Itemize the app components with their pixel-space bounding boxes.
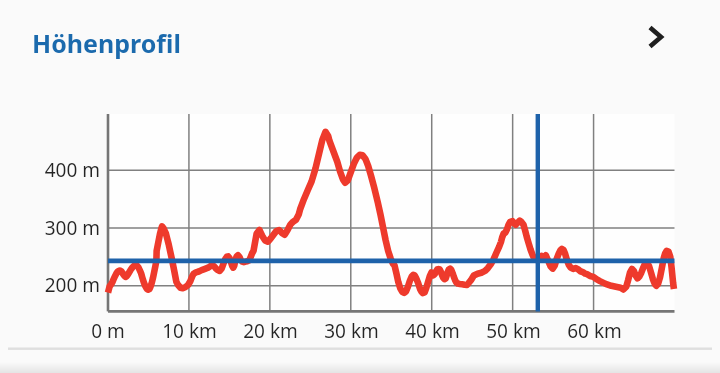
staticText: 0 m	[91, 318, 125, 344]
staticText: 300 m	[44, 215, 100, 241]
staticText: 60 km	[567, 318, 622, 344]
staticText: 40 km	[405, 318, 460, 344]
staticText: 20 km	[243, 318, 298, 344]
staticText: 50 km	[486, 318, 541, 344]
staticText: Höhenprofil	[32, 26, 181, 60]
button[interactable]: Höhenprofil	[0, 0, 720, 86]
staticText: 30 km	[324, 318, 379, 344]
staticText: 200 m	[44, 272, 100, 298]
staticText: 10 km	[162, 318, 217, 344]
staticText: 400 m	[44, 157, 100, 183]
button[interactable]: Details öffnen	[628, 8, 686, 66]
